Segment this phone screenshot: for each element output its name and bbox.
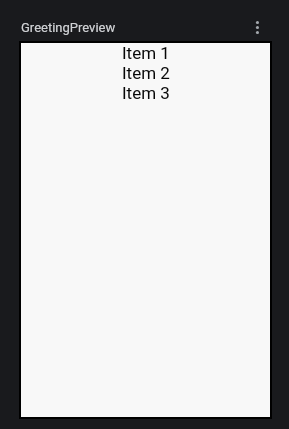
- staticText: GreetingPreview: [21, 20, 116, 35]
- button[interactable]: Item 3: [122, 83, 170, 103]
- button[interactable]: More options: [248, 14, 266, 40]
- staticText: Item 3: [122, 83, 170, 103]
- staticText: Item 3: [122, 83, 170, 103]
- staticText: Item 1: [122, 43, 170, 63]
- button[interactable]: Item 1: [122, 43, 170, 63]
- button[interactable]: Item 2: [122, 63, 170, 83]
- staticText: Item 1: [122, 43, 170, 63]
- staticText: Item 2: [122, 63, 170, 83]
- staticText: Item 2: [122, 63, 170, 83]
